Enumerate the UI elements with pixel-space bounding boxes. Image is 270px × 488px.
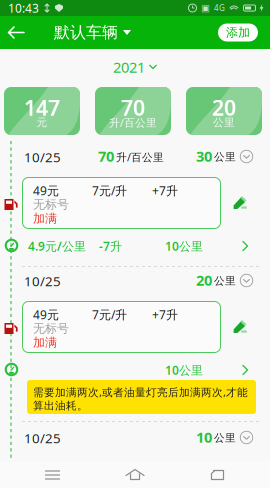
- staticText: 无标号: [33, 197, 69, 212]
- button[interactable]: 70: [95, 87, 171, 135]
- button[interactable]: Back: [0, 16, 34, 49]
- button[interactable]: Back: [187, 462, 247, 488]
- staticText: 10/25: [24, 272, 61, 290]
- staticText: 49元: [33, 306, 59, 322]
- staticText: 70: [98, 146, 114, 166]
- button[interactable]: 10/25: [22, 428, 258, 448]
- staticText: 元: [36, 116, 47, 129]
- staticText: 无标号: [33, 321, 69, 336]
- button[interactable]: 49元: [22, 301, 221, 353]
- button[interactable]: 4.9元/公里: [22, 237, 258, 255]
- button[interactable]: 10/25: [22, 147, 258, 167]
- staticText: 4G: [214, 3, 225, 13]
- staticText: 默认车辆: [54, 23, 118, 42]
- staticText: 30: [196, 146, 212, 166]
- staticText: -7升: [99, 238, 122, 254]
- staticText: 49元: [33, 182, 59, 198]
- button[interactable]: 147: [4, 87, 80, 135]
- staticText: 10公里: [165, 238, 203, 254]
- staticText: 10公里: [165, 362, 203, 378]
- button[interactable]: 2021: [0, 56, 270, 78]
- button[interactable]: 10公里: [22, 361, 258, 379]
- staticText: 10/25: [24, 429, 61, 447]
- button[interactable]: Home: [105, 462, 165, 488]
- staticText: 7元/升: [92, 182, 127, 198]
- staticText: 公里: [214, 431, 236, 444]
- button[interactable]: 20: [186, 87, 262, 135]
- staticText: +7升: [152, 182, 178, 198]
- button[interactable]: 49元: [22, 177, 221, 229]
- staticText: 10:43: [8, 0, 39, 16]
- button[interactable]: 默认车辆: [54, 16, 131, 49]
- staticText: 公里: [214, 150, 236, 163]
- staticText: 加满: [33, 335, 57, 350]
- staticText: 公里: [214, 274, 236, 287]
- button[interactable]: Edit: [232, 319, 248, 335]
- staticText: 70: [121, 93, 145, 122]
- button[interactable]: 10/25: [22, 271, 258, 291]
- staticText: 10/25: [24, 148, 61, 166]
- staticText: 4.9元/公里: [28, 238, 86, 254]
- staticText: 升/百公里: [116, 150, 164, 164]
- button[interactable]: Recents: [22, 462, 82, 488]
- staticText: ▣: [201, 3, 210, 13]
- button[interactable]: Edit: [232, 195, 248, 211]
- staticText: 20: [212, 93, 236, 122]
- staticText: 添加: [226, 25, 250, 40]
- staticText: 147: [24, 93, 60, 122]
- staticText: 7元/升: [92, 306, 127, 322]
- staticText: 需要加满两次,或者油量灯亮后加满两次,才能算出油耗。: [33, 385, 248, 412]
- staticText: 公里: [213, 116, 235, 129]
- staticText: 加满: [33, 211, 57, 226]
- staticText: 升/百公里: [109, 115, 157, 130]
- staticText: +7升: [152, 306, 178, 322]
- staticText: 10: [196, 427, 212, 447]
- staticText: 20: [196, 270, 212, 290]
- staticText: 2021: [113, 57, 145, 77]
- button[interactable]: 添加: [218, 23, 258, 41]
